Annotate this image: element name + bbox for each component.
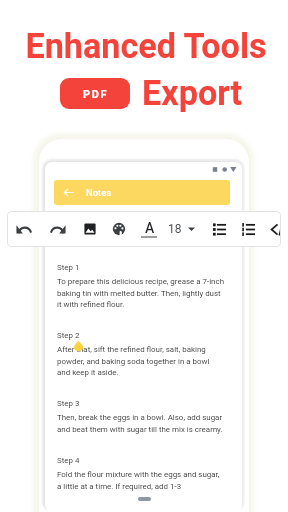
staticText: Export xyxy=(142,73,243,113)
staticText: Step 2 xyxy=(57,331,80,340)
staticText: 18 xyxy=(168,222,182,236)
button[interactable]: Redo xyxy=(45,211,71,247)
button[interactable]: Back xyxy=(54,180,230,205)
button[interactable]: Numbered list xyxy=(235,211,261,247)
staticText: Step 3 xyxy=(57,399,80,408)
staticText: To prepare this delicious recipe, grease… xyxy=(57,277,225,308)
staticText: Step 4 xyxy=(57,456,80,465)
button[interactable]: Undo xyxy=(10,211,36,247)
button[interactable]: More xyxy=(263,211,281,247)
button[interactable]: 18 xyxy=(168,211,195,247)
button[interactable]: Text color xyxy=(106,211,132,247)
button[interactable]: PDF xyxy=(60,78,130,109)
button[interactable]: Text format xyxy=(137,211,163,247)
staticText: Enhanced Tools xyxy=(2,26,288,66)
staticText: Notes xyxy=(86,187,112,198)
button[interactable]: Back xyxy=(56,180,80,204)
staticText: After that, sift the refined flour, salt… xyxy=(57,345,210,376)
staticText: A xyxy=(145,220,155,236)
button[interactable]: Bulleted list xyxy=(206,211,232,247)
staticText: PDF xyxy=(83,88,109,101)
button[interactable]: Insert image xyxy=(77,211,103,247)
staticText: Fold the flour mixture with the eggs and… xyxy=(57,470,220,490)
staticText: Then, break the eggs in a bowl. Also, ad… xyxy=(57,413,223,433)
staticText: Step 1 xyxy=(57,263,80,272)
